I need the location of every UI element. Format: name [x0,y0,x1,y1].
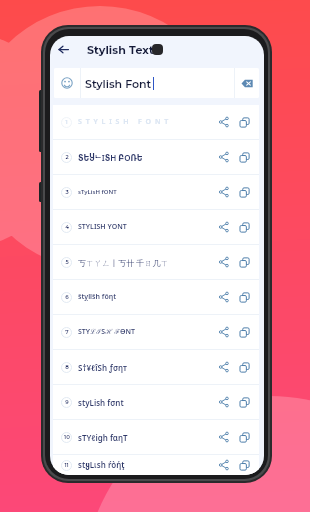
staticText: 5 [65,259,69,266]
button[interactable]: 7 [53,315,259,349]
staticText: ѕTΥℓigh fαηT [78,432,128,443]
button[interactable]: 1 [53,105,259,139]
button[interactable]: Share [216,324,232,340]
staticText: 7 [65,329,69,336]
button[interactable]: Copy [236,429,252,445]
staticText: 8 [65,364,69,371]
staticText: SТƳℒℐЅℋ ℱӨNT [78,327,136,337]
staticText: STYLISH ƳONT [78,222,127,232]
button[interactable]: 11 [53,455,259,475]
button[interactable]: Back [55,41,71,57]
button[interactable]: Copy [236,394,252,410]
button[interactable]: Share [216,359,232,375]
button[interactable]: Share [216,219,232,235]
button[interactable]: Copy [236,457,252,473]
staticText: S T Y L I S H F O N T [78,117,170,127]
staticText: Stylish Text [87,43,154,56]
button[interactable]: Share [216,149,232,165]
button[interactable]: 9 [53,385,259,419]
button[interactable]: Copy [236,289,252,305]
button[interactable]: 8 [53,350,259,384]
button[interactable]: Clear [235,68,259,98]
button[interactable]: Share [216,394,232,410]
button[interactable]: Copy [236,219,252,235]
button[interactable]: Copy [236,149,252,165]
staticText: S†¥ℓîSh ƒσηт [78,362,127,373]
button[interactable]: Copy [236,324,252,340]
button[interactable]: 10 [53,420,259,454]
button[interactable]: 4 [53,210,259,244]
button[interactable]: Share [216,289,232,305]
staticText: 11 [64,462,69,469]
button[interactable]: Emoji keyboard [54,68,80,98]
staticText: 4 [65,224,69,231]
staticText: ՏԵႸᄂIՏH ԲOՌԵ [78,152,143,163]
staticText: 6 [65,294,69,301]
staticText: 2 [65,154,69,161]
button[interactable]: Copy [236,184,252,200]
button[interactable]: 2 [53,140,259,174]
button[interactable]: Share [216,457,232,473]
button[interactable]: Copy [236,114,252,130]
staticText: ѕtуLiѕh fσnt [78,397,124,408]
staticText: ѕtყLเsh ŕòήţ [78,459,125,472]
button[interactable]: Copy [236,359,252,375]
button[interactable]: 5 [53,245,259,279]
button[interactable]: Share [216,114,232,130]
staticText: 1 [65,119,68,126]
staticText: 3 [65,189,69,196]
staticText: 10 [64,434,70,441]
button[interactable]: Share [216,184,232,200]
button[interactable]: 3 [53,175,259,209]
staticText: ŝtỵlîŝh fôηt [78,292,116,302]
staticText: 丂ㄒㄚㄥ丨丂卄 千ㄖ几ㄒ [78,257,169,268]
button[interactable]: Copy [236,254,252,270]
staticText: Stylish Font [85,77,152,90]
button[interactable]: 6 [53,280,259,314]
staticText: 9 [65,399,69,406]
button[interactable]: Share [216,429,232,445]
button[interactable]: Share [216,254,232,270]
staticText: sTyLisH fONT [78,188,117,196]
